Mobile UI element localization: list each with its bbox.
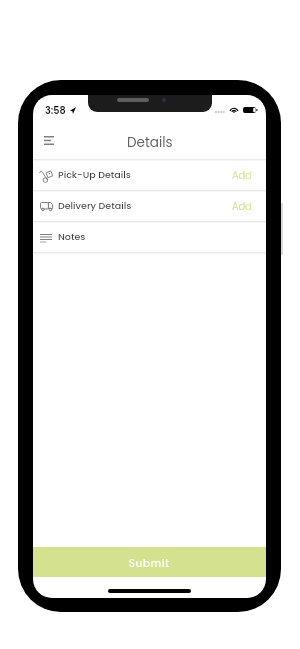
button[interactable]: Pick-Up Details [33,161,266,190]
staticText: Details [127,133,173,152]
button[interactable]: Delivery Details [33,192,266,221]
staticText: 3:58 [45,104,66,117]
button[interactable]: Notes [33,223,266,252]
staticText: Notes [58,230,86,243]
staticText: Add [232,169,252,183]
button[interactable]: Submit [33,547,266,577]
staticText: Delivery Details [58,199,132,212]
staticText: Pick-Up Details [58,168,131,181]
button[interactable]: Menu [38,129,60,151]
staticText: Add [232,200,252,214]
staticText: Submit [129,556,170,570]
